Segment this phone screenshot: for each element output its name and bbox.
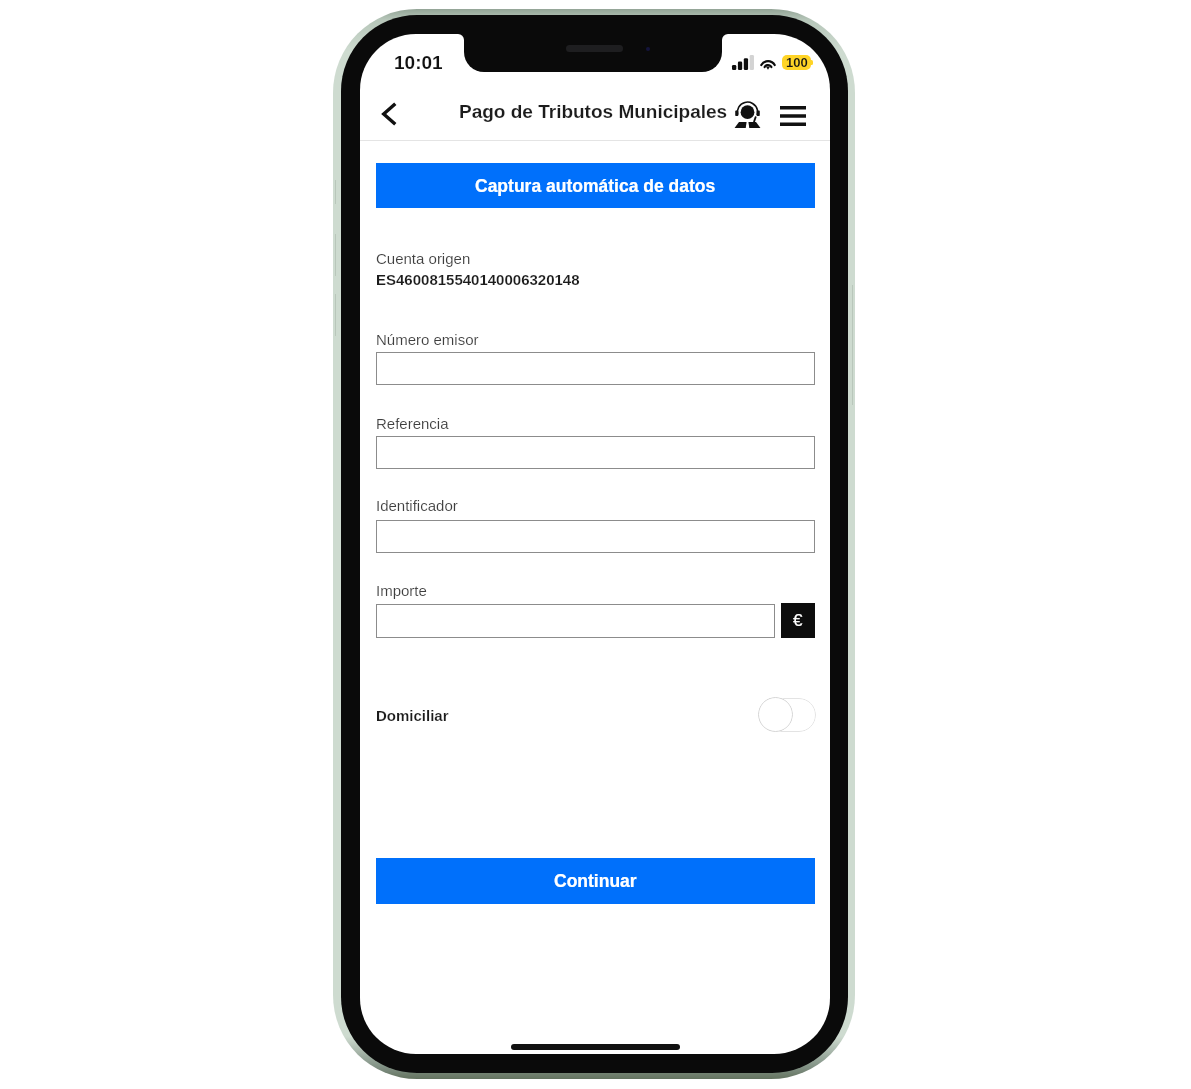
staticText: Referencia (376, 415, 449, 432)
staticText: Domiciliar (376, 707, 449, 724)
button[interactable]: Identificador (376, 520, 815, 553)
staticText: 10:01 (394, 52, 443, 73)
button[interactable]: Moneda euros (781, 603, 815, 638)
button[interactable]: Captura automática de datos (376, 163, 815, 208)
button[interactable]: Domiciliar (758, 697, 816, 732)
staticText: Número emisor (376, 331, 479, 348)
button[interactable]: Atención al cliente (728, 95, 766, 133)
button[interactable]: Referencia (376, 436, 815, 469)
staticText: Captura automática de datos (475, 176, 716, 196)
button[interactable]: Continuar (376, 858, 815, 904)
staticText: Cuenta origen (376, 250, 471, 267)
staticText: € (793, 611, 803, 630)
button[interactable]: Atrás (372, 93, 406, 135)
staticText: Continuar (554, 871, 637, 891)
button[interactable]: Importe (376, 604, 775, 638)
staticText: Identificador (376, 497, 458, 514)
button[interactable]: Menú (774, 97, 812, 135)
button[interactable]: Número emisor (376, 352, 815, 385)
staticText: Pago de Tributos Municipales (459, 101, 728, 122)
staticText: 100 (786, 55, 808, 70)
staticText: Importe (376, 582, 427, 599)
staticText: ES4600815540140006320148 (376, 271, 580, 288)
